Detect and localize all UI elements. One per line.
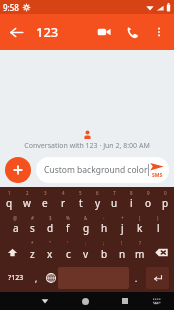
button[interactable]: @	[7, 214, 24, 239]
button[interactable]: ?123	[3, 267, 29, 289]
button[interactable]: Custom background color	[36, 157, 169, 183]
staticText: r	[61, 196, 66, 210]
staticText: 5	[79, 190, 82, 196]
button[interactable]: '	[59, 239, 77, 265]
button[interactable]: Back	[0, 16, 32, 48]
staticText: 2	[26, 190, 29, 196]
staticText: ;	[103, 240, 105, 246]
button[interactable]: 0	[157, 189, 174, 214]
button[interactable]: Call	[118, 18, 146, 46]
staticText: k	[137, 221, 143, 235]
button[interactable]: +	[113, 214, 131, 239]
button[interactable]: 1	[0, 189, 18, 214]
staticText: #	[31, 215, 34, 221]
staticText: w	[23, 196, 31, 210]
staticText: c	[66, 247, 71, 261]
staticText: $	[49, 215, 52, 221]
button[interactable]: #	[24, 214, 41, 239]
button[interactable]: 7	[106, 189, 123, 214]
button[interactable]: 8	[123, 189, 140, 214]
staticText: 9:58	[3, 2, 19, 13]
staticText: u	[111, 196, 118, 210]
staticText: 1	[8, 190, 11, 196]
staticText: Custom background color	[44, 164, 148, 176]
staticText: .	[135, 273, 138, 284]
staticText: y	[95, 196, 101, 210]
staticText: s	[30, 221, 35, 235]
staticText: m	[135, 247, 145, 261]
staticText: )	[157, 215, 159, 221]
button[interactable]: 5	[72, 189, 89, 214]
button[interactable]: Backspace	[149, 239, 174, 265]
staticText: @	[13, 215, 18, 221]
button[interactable]: ,	[29, 267, 43, 289]
staticText: 0	[164, 190, 167, 196]
button[interactable]: "	[41, 239, 59, 265]
staticText: !	[121, 240, 123, 246]
button[interactable]: Shift	[0, 239, 24, 265]
button[interactable]: Back	[36, 292, 54, 310]
button[interactable]: :	[77, 239, 95, 265]
staticText: e	[42, 196, 48, 210]
staticText: a	[13, 221, 19, 235]
button[interactable]: Enter	[146, 267, 169, 289]
staticText: '	[67, 240, 69, 246]
button[interactable]: 9	[140, 189, 157, 214]
staticText: :	[85, 240, 87, 246]
staticText: 3	[44, 190, 47, 196]
button[interactable]: &	[77, 214, 95, 239]
staticText: x	[47, 247, 53, 261]
staticText: l	[157, 221, 160, 235]
staticText: %	[66, 215, 70, 221]
button[interactable]: 6	[89, 189, 106, 214]
staticText: n	[119, 247, 126, 261]
staticText: +	[121, 215, 124, 221]
button[interactable]: Recents	[116, 292, 134, 310]
button[interactable]: More options	[146, 19, 172, 45]
button[interactable]: Home	[76, 292, 94, 310]
button[interactable]: !	[113, 239, 131, 265]
staticText: h	[101, 221, 108, 235]
button[interactable]: ;	[95, 239, 113, 265]
staticText: "	[49, 240, 51, 246]
staticText: ,	[35, 273, 38, 284]
staticText: o	[145, 196, 152, 210]
button[interactable]: )	[149, 214, 167, 239]
staticText: 9	[147, 190, 150, 196]
button[interactable]: 4	[54, 189, 72, 214]
staticText: ?	[139, 240, 141, 246]
staticText: -	[103, 215, 105, 221]
button[interactable]: Switch keyboard	[149, 293, 165, 309]
button[interactable]: Video call	[90, 18, 118, 46]
button[interactable]: $	[41, 214, 59, 239]
button[interactable]: Change language	[43, 267, 58, 289]
staticText: (	[139, 215, 141, 221]
staticText: g	[83, 221, 90, 235]
staticText: i	[130, 196, 133, 210]
button[interactable]: 3	[36, 189, 54, 214]
staticText: 7	[113, 190, 116, 196]
staticText: t	[79, 196, 83, 210]
button[interactable]: %	[59, 214, 77, 239]
button[interactable]: .	[129, 267, 144, 289]
staticText: ?123	[8, 273, 24, 283]
staticText: *	[31, 240, 34, 246]
button[interactable]: 2	[18, 189, 36, 214]
button[interactable]: (	[131, 214, 149, 239]
button[interactable]: *	[24, 239, 41, 265]
staticText: z	[30, 247, 35, 261]
button[interactable]: -	[95, 214, 113, 239]
staticText: f	[66, 221, 70, 235]
staticText: q	[6, 196, 13, 210]
button[interactable]: Add attachment	[5, 157, 31, 183]
button[interactable]: ?	[131, 239, 149, 265]
staticText: b	[101, 247, 108, 261]
button[interactable]: Send SMS	[149, 162, 165, 179]
staticText: Conversation with 123 · Jun 2, 8:00 AM	[24, 141, 150, 151]
staticText: 6	[96, 190, 99, 196]
staticText: &	[84, 215, 88, 221]
staticText: p	[162, 196, 169, 210]
staticText: SMS	[152, 172, 163, 179]
staticText: 8	[130, 190, 133, 196]
